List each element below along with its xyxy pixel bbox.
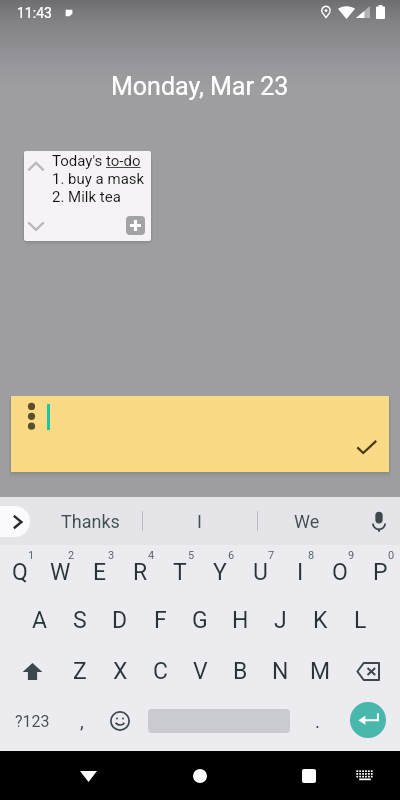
- staticText: Thanks: [61, 511, 120, 532]
- button[interactable]: Z: [60, 645, 100, 697]
- button[interactable]: We: [257, 497, 357, 545]
- button[interactable]: E: [80, 545, 120, 595]
- button[interactable]: Y: [200, 545, 240, 595]
- staticText: L: [354, 607, 367, 634]
- button[interactable]: N: [260, 645, 300, 697]
- staticText: N: [272, 658, 289, 685]
- staticText: 4: [148, 549, 155, 562]
- button[interactable]: Thanks: [40, 497, 140, 545]
- staticText: T: [173, 559, 187, 586]
- button[interactable]: I: [149, 497, 249, 545]
- staticText: X: [113, 658, 128, 685]
- button[interactable]: G: [180, 595, 220, 645]
- staticText: 6: [228, 549, 235, 562]
- button[interactable]: Scroll up: [24, 151, 151, 241]
- staticText: 5: [188, 549, 195, 562]
- button[interactable]: W: [40, 545, 80, 595]
- staticText: to-do: [106, 152, 141, 170]
- button[interactable]: Home: [180, 756, 220, 796]
- button[interactable]: Expand suggestions: [0, 506, 30, 537]
- button[interactable]: B: [220, 645, 260, 697]
- button[interactable]: P: [360, 545, 400, 595]
- staticText: 0: [388, 549, 395, 562]
- staticText: C: [153, 658, 168, 685]
- staticText: K: [313, 607, 328, 634]
- button[interactable]: Scroll down: [27, 217, 45, 231]
- staticText: 1: [28, 549, 35, 562]
- staticText: 7: [268, 549, 275, 562]
- button[interactable]: Recents: [289, 756, 329, 796]
- staticText: 2: [68, 549, 75, 562]
- staticText: Z: [73, 658, 87, 685]
- staticText: .: [315, 710, 321, 732]
- button[interactable]: V: [180, 645, 220, 697]
- button[interactable]: O: [320, 545, 360, 595]
- staticText: F: [154, 607, 167, 634]
- button[interactable]: More options: [26, 398, 37, 432]
- staticText: H: [232, 607, 249, 634]
- button[interactable]: L: [340, 595, 380, 645]
- button[interactable]: K: [300, 595, 340, 645]
- staticText: V: [193, 658, 208, 685]
- button[interactable]: R: [120, 545, 160, 595]
- staticText: W: [50, 559, 71, 586]
- button[interactable]: Shift: [12, 645, 52, 697]
- staticText: ?123: [15, 712, 50, 731]
- staticText: 11:43: [17, 5, 52, 21]
- button[interactable]: Backspace: [348, 645, 388, 697]
- staticText: 3: [108, 549, 115, 562]
- button[interactable]: Emoji: [100, 697, 140, 745]
- staticText: U: [253, 559, 268, 586]
- button[interactable]: C: [140, 645, 180, 697]
- button[interactable]: Q: [0, 545, 40, 595]
- button[interactable]: J: [260, 595, 300, 645]
- staticText: I: [297, 559, 304, 586]
- button[interactable]: Switch keyboard: [345, 756, 385, 796]
- staticText: We: [294, 511, 320, 532]
- staticText: 8: [308, 549, 315, 562]
- button[interactable]: Enter: [350, 702, 386, 738]
- staticText: Monday, Mar 23: [111, 72, 289, 101]
- button[interactable]: Done: [356, 438, 378, 456]
- button[interactable]: D: [100, 595, 140, 645]
- staticText: E: [93, 559, 107, 586]
- button[interactable]: S: [60, 595, 100, 645]
- button[interactable]: I: [280, 545, 320, 595]
- button[interactable]: More options: [11, 396, 389, 472]
- button[interactable]: ,: [62, 697, 102, 745]
- staticText: Today's: [52, 152, 106, 170]
- staticText: Y: [213, 559, 227, 586]
- button[interactable]: X: [100, 645, 140, 697]
- staticText: J: [274, 607, 287, 634]
- button[interactable]: Scroll up: [27, 157, 45, 171]
- staticText: D: [112, 607, 128, 634]
- button[interactable]: ?123: [9, 697, 55, 745]
- button[interactable]: H: [220, 595, 260, 645]
- staticText: I: [197, 511, 202, 532]
- staticText: 9: [348, 549, 355, 562]
- button[interactable]: Add item: [126, 216, 145, 235]
- staticText: B: [233, 658, 248, 685]
- staticText: A: [32, 607, 48, 634]
- staticText: O: [332, 559, 348, 586]
- staticText: P: [373, 559, 388, 586]
- button[interactable]: Back: [68, 756, 108, 796]
- staticText: G: [192, 607, 208, 634]
- staticText: ,: [80, 710, 84, 732]
- button[interactable]: U: [240, 545, 280, 595]
- staticText: S: [73, 607, 87, 634]
- staticText: 1. buy a mask: [52, 170, 145, 188]
- staticText: R: [133, 559, 148, 586]
- staticText: M: [310, 658, 331, 685]
- button[interactable]: T: [160, 545, 200, 595]
- staticText: Q: [12, 559, 28, 586]
- button[interactable]: Voice input: [359, 497, 399, 545]
- button[interactable]: .: [298, 697, 338, 745]
- button[interactable]: A: [20, 595, 60, 645]
- button[interactable]: F: [140, 595, 180, 645]
- staticText: 2. Milk tea: [52, 188, 121, 206]
- button[interactable]: M: [300, 645, 340, 697]
